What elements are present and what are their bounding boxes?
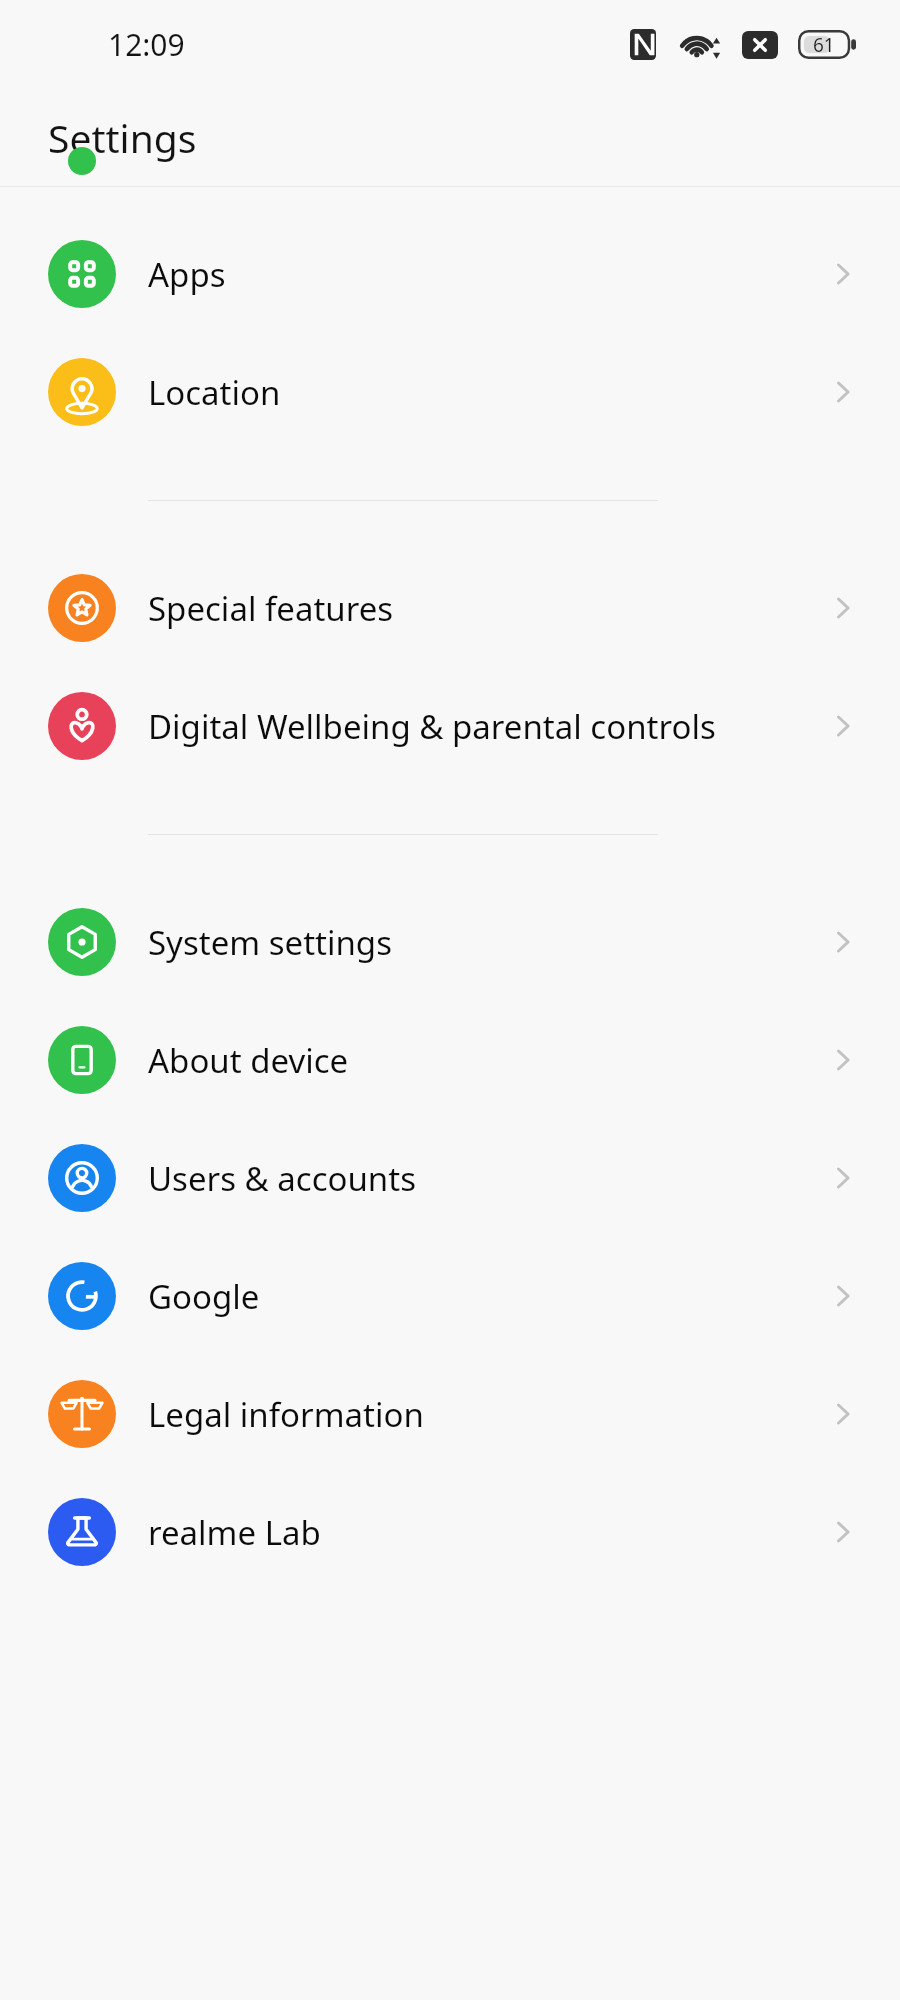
other: Open System settings xyxy=(828,927,858,957)
other: Open Users & accounts xyxy=(828,1163,858,1193)
button[interactable]: Location xyxy=(0,333,900,451)
other: Open Google xyxy=(828,1281,858,1311)
staticText: 12:09 xyxy=(108,24,185,65)
staticText: Google xyxy=(148,1274,820,1319)
button[interactable]: Digital Wellbeing & parental controls xyxy=(0,667,900,785)
other: Open About device xyxy=(828,1045,858,1075)
staticText: Location xyxy=(148,370,820,415)
button[interactable]: Legal information xyxy=(0,1355,900,1473)
button[interactable]: Apps xyxy=(0,215,900,333)
button[interactable]: Users & accounts xyxy=(0,1119,900,1237)
staticText: System settings xyxy=(148,920,820,965)
staticText: Legal information xyxy=(148,1392,820,1437)
button[interactable]: realme Lab xyxy=(0,1473,900,1591)
staticText: About device xyxy=(148,1038,820,1083)
button[interactable]: About device xyxy=(0,1001,900,1119)
button[interactable]: Google xyxy=(0,1237,900,1355)
staticText: Apps xyxy=(148,252,820,297)
staticText: 61 xyxy=(813,32,835,58)
other: Open realme Lab xyxy=(828,1517,858,1547)
button[interactable]: Special features xyxy=(0,549,900,667)
staticText: Settings xyxy=(48,111,197,164)
other: Open Apps xyxy=(828,259,858,289)
other: Open Legal information xyxy=(828,1399,858,1429)
other: Open Special features xyxy=(828,593,858,623)
staticText: Special features xyxy=(148,586,820,631)
other: Open Location xyxy=(828,377,858,407)
staticText: Users & accounts xyxy=(148,1156,820,1201)
staticText: realme Lab xyxy=(148,1510,820,1555)
button[interactable]: System settings xyxy=(0,883,900,1001)
staticText: Digital Wellbeing & parental controls xyxy=(148,704,820,749)
other: Open Digital Wellbeing & parental contro… xyxy=(828,711,858,741)
